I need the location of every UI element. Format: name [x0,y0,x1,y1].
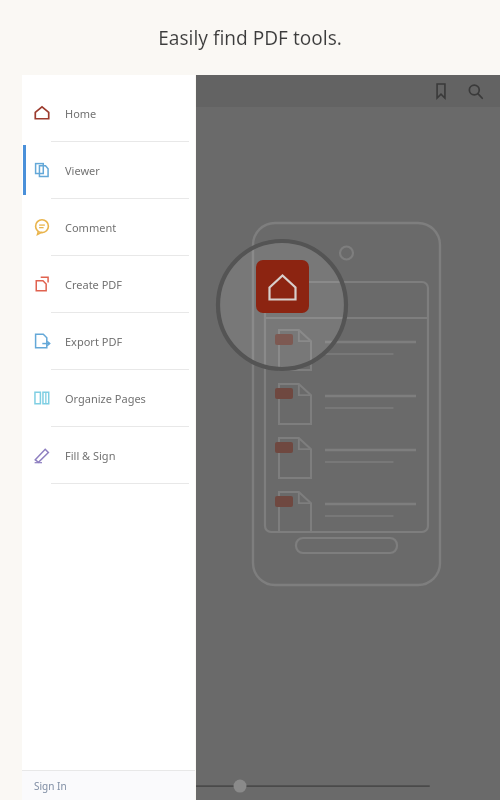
button[interactable]: Home [22,85,195,141]
staticText: Viewer [65,163,100,178]
button[interactable]: Export PDF [22,313,195,369]
button[interactable]: Viewer [22,142,195,198]
staticText: Comment [65,220,117,235]
button[interactable]: Organize Pages [22,370,195,426]
button[interactable]: Search [458,75,492,107]
staticText: Easily find PDF tools. [158,25,342,51]
staticText: Organize Pages [65,391,146,406]
staticText: Create PDF [65,277,123,292]
staticText: Home [65,106,97,121]
button[interactable]: Comment [22,199,195,255]
staticText: Export PDF [65,334,123,349]
button[interactable]: Bookmarks [424,75,458,107]
button[interactable]: Create PDF [22,256,195,312]
button[interactable]: Fill & Sign [22,427,195,483]
staticText: Fill & Sign [65,448,116,463]
button[interactable]: Sign In [22,771,195,800]
staticText: Sign In [34,779,67,793]
